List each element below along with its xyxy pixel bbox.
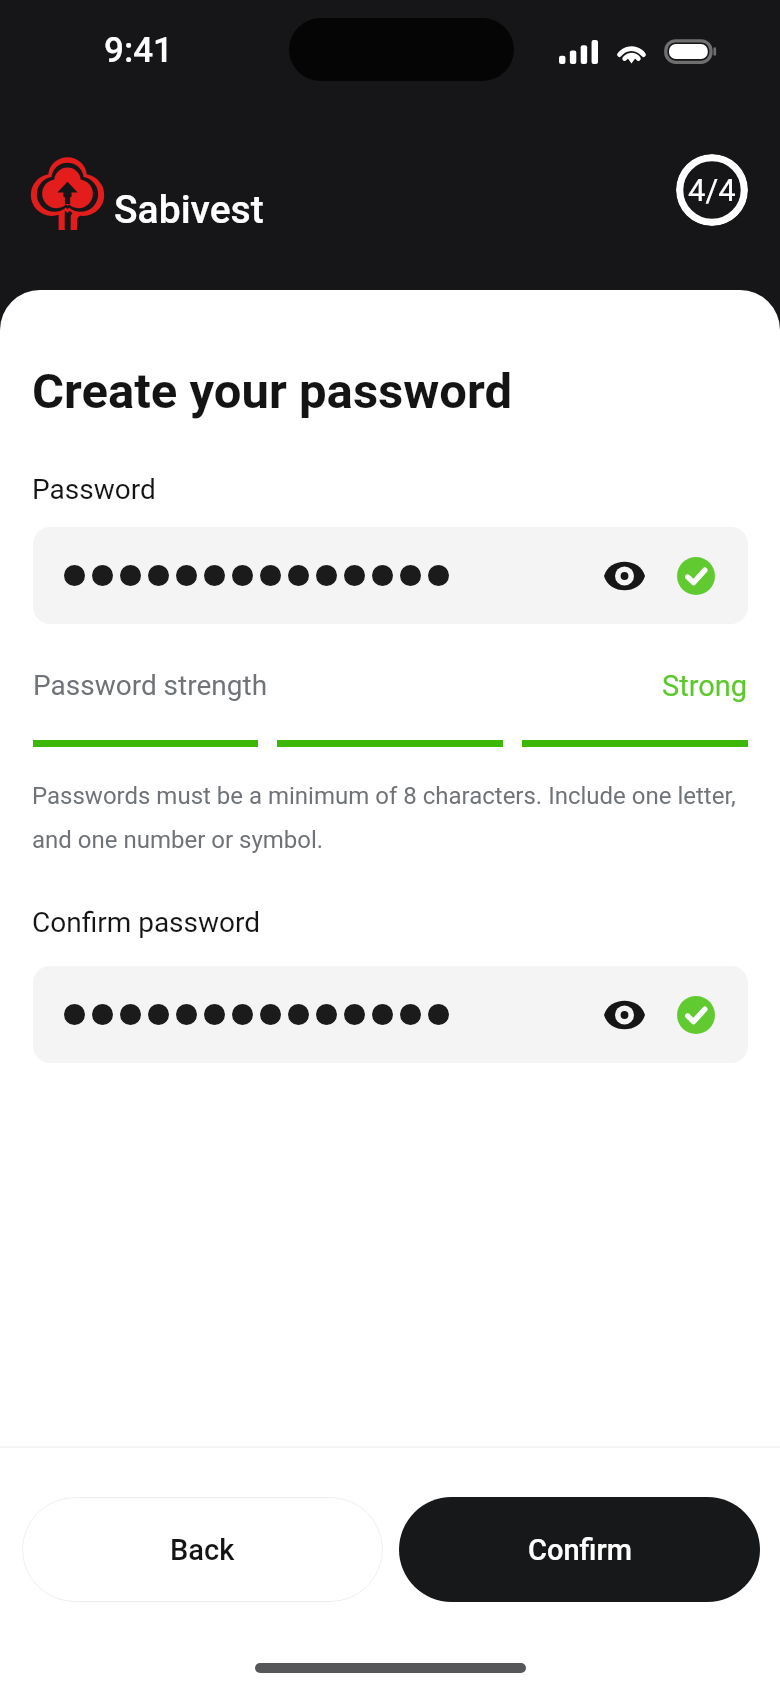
other: Valid bbox=[677, 996, 715, 1034]
other: Valid bbox=[677, 557, 715, 595]
button[interactable]: Confirm bbox=[399, 1497, 760, 1602]
staticText: Confirm password bbox=[32, 906, 261, 939]
staticText: Password bbox=[32, 473, 156, 506]
staticText: Password strength bbox=[33, 669, 268, 702]
staticText: Back bbox=[170, 1533, 235, 1567]
button[interactable]: Step 4 of 4 bbox=[676, 154, 748, 226]
staticText: Passwords must be a minimum of 8 charact… bbox=[32, 782, 754, 854]
button[interactable]: Show password bbox=[33, 527, 748, 624]
button[interactable]: Show password bbox=[33, 966, 748, 1063]
staticText: 9:41 bbox=[104, 30, 173, 71]
staticText: Confirm bbox=[528, 1533, 632, 1567]
staticText: Sabivest bbox=[114, 187, 264, 233]
button[interactable]: Show password bbox=[598, 989, 650, 1041]
button[interactable]: Show password bbox=[598, 550, 650, 602]
staticText: Create your password bbox=[32, 363, 513, 420]
staticText: 4/4 bbox=[688, 172, 736, 208]
button[interactable]: Back bbox=[22, 1497, 383, 1602]
staticText: Strong bbox=[662, 669, 748, 703]
